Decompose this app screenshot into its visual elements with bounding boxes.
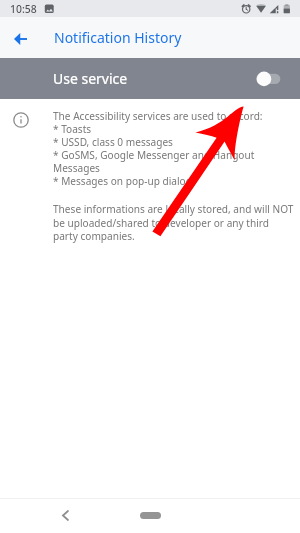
button[interactable]: Use service (0, 58, 300, 99)
button[interactable]: Back (0, 17, 41, 58)
button[interactable]: Back (53, 503, 77, 527)
staticText: 10:58 (10, 2, 37, 16)
button[interactable]: Home (140, 512, 161, 519)
staticText: Notification History (54, 28, 182, 47)
staticText: The Accessibility services are used to r… (53, 109, 294, 188)
staticText: Use service (53, 69, 128, 88)
staticText: These informations are locally stored, a… (53, 202, 294, 242)
